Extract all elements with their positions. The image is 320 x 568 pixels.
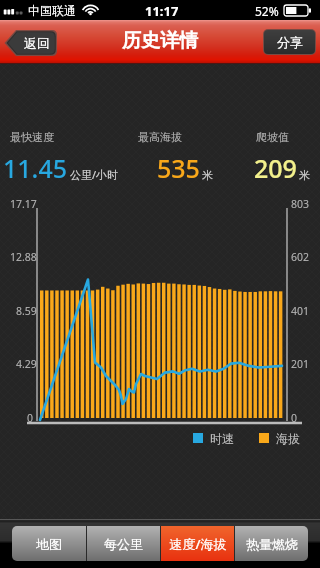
staticText: 公里/小时 (70, 167, 119, 182)
button[interactable]: 返回 (4, 30, 57, 56)
staticText: 201 (291, 357, 310, 371)
button[interactable]: 速度/海拔 (161, 526, 234, 561)
staticText: 11.45 (3, 151, 68, 185)
button[interactable]: 地图 (12, 526, 86, 561)
staticText: 返回 (24, 35, 50, 51)
staticText: 米 (202, 168, 213, 182)
staticText: 17.17 (10, 197, 37, 211)
staticText: 52% (255, 3, 279, 19)
staticText: 地图 (36, 536, 62, 552)
staticText: 最快速度 (10, 130, 54, 144)
staticText: 602 (291, 250, 310, 264)
button[interactable]: 热量燃烧 (235, 526, 308, 561)
staticText: 8.59 (16, 304, 37, 318)
staticText: 401 (291, 304, 310, 318)
staticText: 分享 (277, 34, 303, 50)
staticText: 中国联通 (28, 3, 76, 18)
staticText: 海拔 (276, 431, 300, 446)
button[interactable]: 每公里 (87, 526, 160, 561)
staticText: 4.29 (16, 357, 37, 371)
staticText: 11:17 (145, 2, 179, 20)
staticText: 0 (291, 411, 298, 425)
staticText: 米 (299, 168, 310, 182)
staticText: 209 (254, 151, 297, 185)
staticText: 最高海拔 (138, 130, 182, 144)
staticText: 0 (27, 411, 34, 425)
button[interactable]: 分享 (264, 30, 315, 54)
staticText: 热量燃烧 (246, 536, 298, 552)
staticText: 每公里 (104, 536, 143, 552)
staticText: 803 (291, 197, 310, 211)
staticText: 速度/海拔 (169, 535, 227, 553)
staticText: 爬坡值 (256, 130, 289, 144)
staticText: 时速 (210, 431, 234, 446)
staticText: 535 (157, 151, 200, 185)
staticText: 12.88 (10, 250, 37, 264)
staticText: 历史详情 (122, 29, 198, 53)
